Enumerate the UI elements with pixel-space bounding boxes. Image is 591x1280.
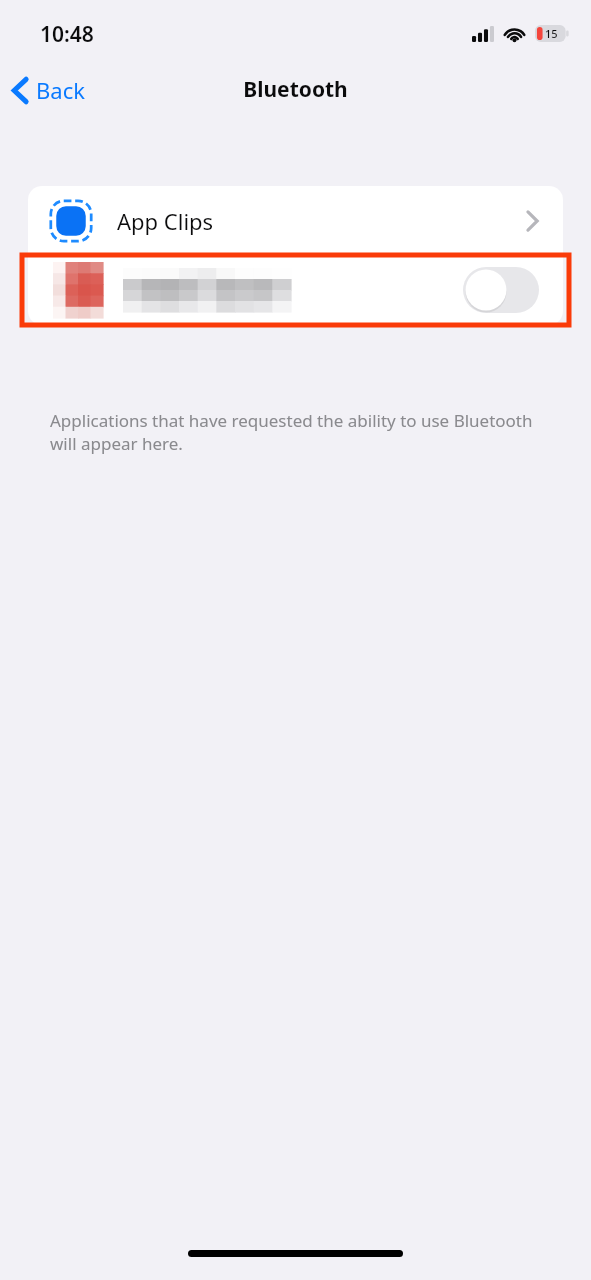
button[interactable]: App Clips: [28, 186, 563, 255]
staticText: App Clips: [117, 206, 214, 236]
staticText: Applications that have requested the abi…: [50, 409, 535, 455]
button[interactable]: Bluetooth permission toggle, off: [463, 267, 539, 313]
button[interactable]: Back: [0, 69, 99, 111]
staticText: Back: [36, 75, 85, 105]
staticText: Bluetooth: [243, 75, 348, 104]
staticText: 10:48: [40, 20, 94, 49]
button[interactable]: Bluetooth permission toggle, off: [28, 255, 563, 325]
staticText: 15: [545, 26, 558, 41]
